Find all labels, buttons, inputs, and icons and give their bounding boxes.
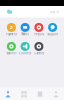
- button[interactable]: Weather: [6, 8, 14, 15]
- staticText: History: [34, 32, 43, 36]
- button[interactable]: Wallet: [18, 23, 32, 36]
- staticText: Payment: [6, 32, 17, 36]
- button[interactable]: Scanner: [4, 42, 18, 55]
- staticText: Scanner: [6, 51, 16, 55]
- button[interactable]: Home: [0, 87, 16, 100]
- staticText: Camera: [34, 51, 43, 55]
- staticText: Wallet: [21, 32, 29, 36]
- staticText: Connect: [19, 51, 31, 55]
- button[interactable]: Connect: [18, 42, 32, 55]
- button[interactable]: Browse: [16, 87, 32, 100]
- staticText: Support: [47, 32, 58, 36]
- button[interactable]: Camera: [32, 42, 46, 55]
- button[interactable]: Payment: [4, 23, 18, 36]
- button[interactable]: Profile: [48, 87, 64, 100]
- button[interactable]: Support: [46, 23, 60, 36]
- button[interactable]: Log in: [49, 9, 60, 15]
- staticText: Log in: [50, 10, 59, 13]
- button[interactable]: History: [32, 23, 46, 36]
- button[interactable]: Wallet: [32, 87, 48, 100]
